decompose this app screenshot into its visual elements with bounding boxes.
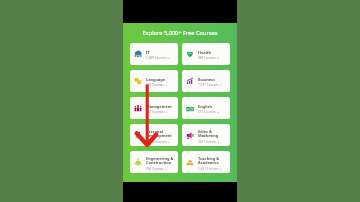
staticText: 1,230 Courses →: [146, 140, 170, 144]
staticText: Teaching & Academics: [198, 156, 220, 166]
button[interactable]: Engineering & Construction: [130, 151, 178, 173]
staticText: Health: [198, 50, 212, 55]
staticText: 689 Courses →: [146, 83, 168, 87]
staticText: 1,591 Courses →: [198, 83, 222, 87]
button[interactable]: Language: [130, 70, 178, 92]
staticText: Language: [146, 77, 166, 82]
button[interactable]: Personal Development: [130, 124, 178, 146]
staticText: 868 Courses →: [198, 56, 220, 60]
button[interactable]: Business: [182, 70, 230, 92]
staticText: 515 Courses →: [198, 110, 220, 114]
staticText: Engineering & Construction: [146, 156, 174, 166]
staticText: Sales & Marketing: [198, 129, 219, 139]
staticText: English: [198, 104, 212, 109]
button[interactable]: Management: [130, 97, 178, 119]
staticText: IT: [146, 50, 150, 55]
button[interactable]: English: [182, 97, 230, 119]
button[interactable]: IT: [130, 43, 178, 65]
staticText: 1,421 Courses →: [198, 167, 222, 171]
button[interactable]: Health: [182, 43, 230, 65]
staticText: 341 Courses →: [198, 140, 220, 144]
staticText: 1,289 Courses →: [146, 56, 170, 60]
staticText: Explore 5,000+ Free Courses: [123, 29, 237, 37]
staticText: 914 Courses →: [146, 110, 168, 114]
button[interactable]: Sales & Marketing: [182, 124, 230, 146]
staticText: Personal Development: [146, 129, 173, 139]
staticText: 764 Courses →: [146, 167, 168, 171]
staticText: Business: [198, 77, 215, 82]
staticText: Management: [146, 104, 172, 109]
button[interactable]: Teaching & Academics: [182, 151, 230, 173]
